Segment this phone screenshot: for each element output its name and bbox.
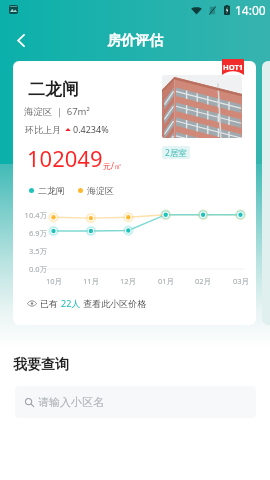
- staticText: 6.9万: [14, 228, 47, 238]
- staticText: 10月: [41, 276, 67, 286]
- staticText: 已有: [40, 297, 61, 309]
- staticText: 0.0万: [14, 264, 47, 274]
- staticText: 海淀区 ｜ 67m²: [24, 105, 90, 118]
- staticText: 02月: [190, 276, 216, 286]
- button[interactable]: 二龙闸: [13, 61, 256, 325]
- button[interactable]: 已有: [27, 297, 147, 309]
- staticText: 元/㎡: [103, 160, 122, 171]
- button[interactable]: Back: [0, 20, 41, 61]
- staticText: 12月: [115, 276, 141, 286]
- button[interactable]: 请输入小区名: [15, 386, 256, 418]
- staticText: 我要查询: [13, 356, 69, 374]
- staticText: 3.5万: [14, 246, 47, 256]
- staticText: 二龙闸: [28, 79, 79, 100]
- staticText: 0.4234%: [73, 123, 109, 135]
- staticText: 请输入小区名: [38, 395, 104, 409]
- staticText: 01月: [153, 276, 179, 286]
- staticText: 海淀区: [87, 185, 114, 196]
- staticText: 102049: [27, 143, 103, 173]
- staticText: 二龙闸: [38, 185, 65, 196]
- staticText: 10.4万: [14, 210, 47, 220]
- staticText: 11月: [78, 276, 104, 286]
- staticText: 22人: [61, 297, 81, 309]
- staticText: HOT1: [222, 62, 244, 72]
- staticText: 03月: [228, 276, 254, 286]
- staticText: 环比上月: [25, 124, 61, 135]
- staticText: 14:00: [235, 2, 266, 18]
- staticText: 2居室: [165, 147, 187, 159]
- staticText: 房价评估: [107, 32, 163, 50]
- staticText: 查看此小区价格: [81, 297, 147, 309]
